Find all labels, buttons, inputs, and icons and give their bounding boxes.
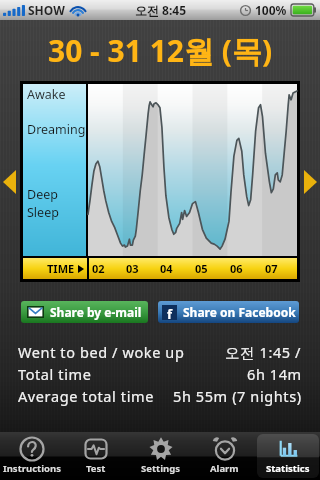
staticText: TIME [47,261,75,276]
staticText: Alarm [210,462,239,475]
staticText: Instructions [3,462,61,475]
staticText: Total time [18,364,92,384]
staticText: Settings [141,462,180,475]
staticText: 05 [195,261,208,276]
staticText: 100% [255,2,287,18]
staticText: Share by e-mail [50,304,142,320]
staticText: 06 [230,261,243,276]
staticText: Dreaming [27,121,86,138]
staticText: 07 [265,261,278,276]
staticText: SHOW [28,2,65,18]
staticText: 04 [160,261,173,276]
staticText: 6h 14m [247,364,302,384]
staticText: 30 - 31 12월 (목) [48,30,273,71]
staticText: 03 [126,261,139,276]
staticText: 오전 8:45 [135,2,187,18]
button[interactable]: Next night [304,170,317,194]
button[interactable]: Awake [23,84,297,279]
staticText: f [167,305,173,320]
button[interactable]: Alarm [193,434,255,478]
button[interactable]: Share by e-mail [21,301,148,323]
button[interactable]: Previous night [3,170,16,194]
staticText: Average total time [18,386,154,406]
staticText: Awake [27,86,66,103]
button[interactable]: Statistics [257,434,319,478]
staticText: 02 [92,261,105,276]
staticText: 5h 55m (7 nights) [173,386,302,406]
staticText: Share on Facebook [183,304,296,320]
button[interactable]: Test [65,434,127,478]
staticText: Deep Sleep [27,186,59,221]
button[interactable]: f [158,301,299,323]
staticText: Test [86,462,106,475]
button[interactable]: Instructions [1,434,63,478]
staticText: Statistics [266,462,310,475]
staticText: Went to bed / woke up [18,342,185,362]
button[interactable]: Settings [129,434,191,478]
staticText: 오전 1:45 / [225,342,302,362]
